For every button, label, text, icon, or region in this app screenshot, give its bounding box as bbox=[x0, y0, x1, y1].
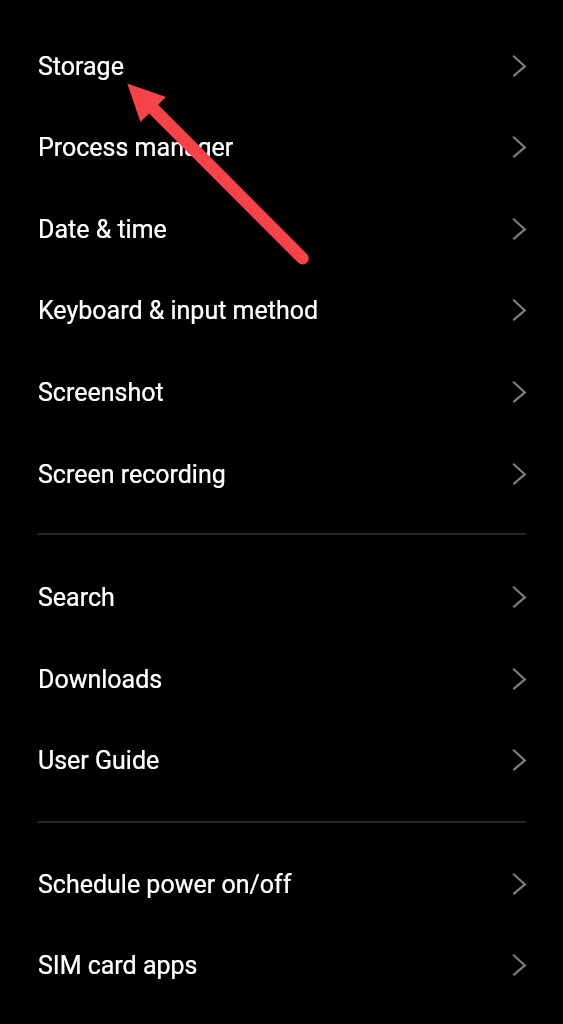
staticText: User Guide bbox=[38, 746, 512, 775]
button[interactable]: Keyboard & input method bbox=[0, 269, 563, 351]
staticText: Date & time bbox=[38, 215, 512, 244]
staticText: SIM card apps bbox=[38, 951, 512, 980]
staticText: Keyboard & input method bbox=[38, 296, 512, 325]
staticText: Process manager bbox=[38, 133, 512, 162]
button[interactable]: Downloads bbox=[0, 638, 563, 720]
button[interactable]: Search bbox=[0, 556, 563, 638]
staticText: Downloads bbox=[38, 665, 512, 694]
staticText: Screenshot bbox=[38, 378, 512, 407]
button[interactable]: Process manager bbox=[0, 106, 563, 188]
button[interactable]: Screenshot bbox=[0, 351, 563, 433]
staticText: Storage bbox=[38, 52, 512, 81]
button[interactable]: Storage bbox=[0, 25, 563, 107]
button[interactable]: SIM card apps bbox=[0, 924, 563, 1006]
button[interactable]: Schedule power on/off bbox=[0, 843, 563, 925]
button[interactable]: Date & time bbox=[0, 188, 563, 270]
staticText: Screen recording bbox=[38, 460, 512, 489]
staticText: Schedule power on/off bbox=[38, 870, 512, 899]
button[interactable]: Screen recording bbox=[0, 433, 563, 515]
button[interactable]: User Guide bbox=[0, 719, 563, 801]
staticText: Search bbox=[38, 583, 512, 612]
